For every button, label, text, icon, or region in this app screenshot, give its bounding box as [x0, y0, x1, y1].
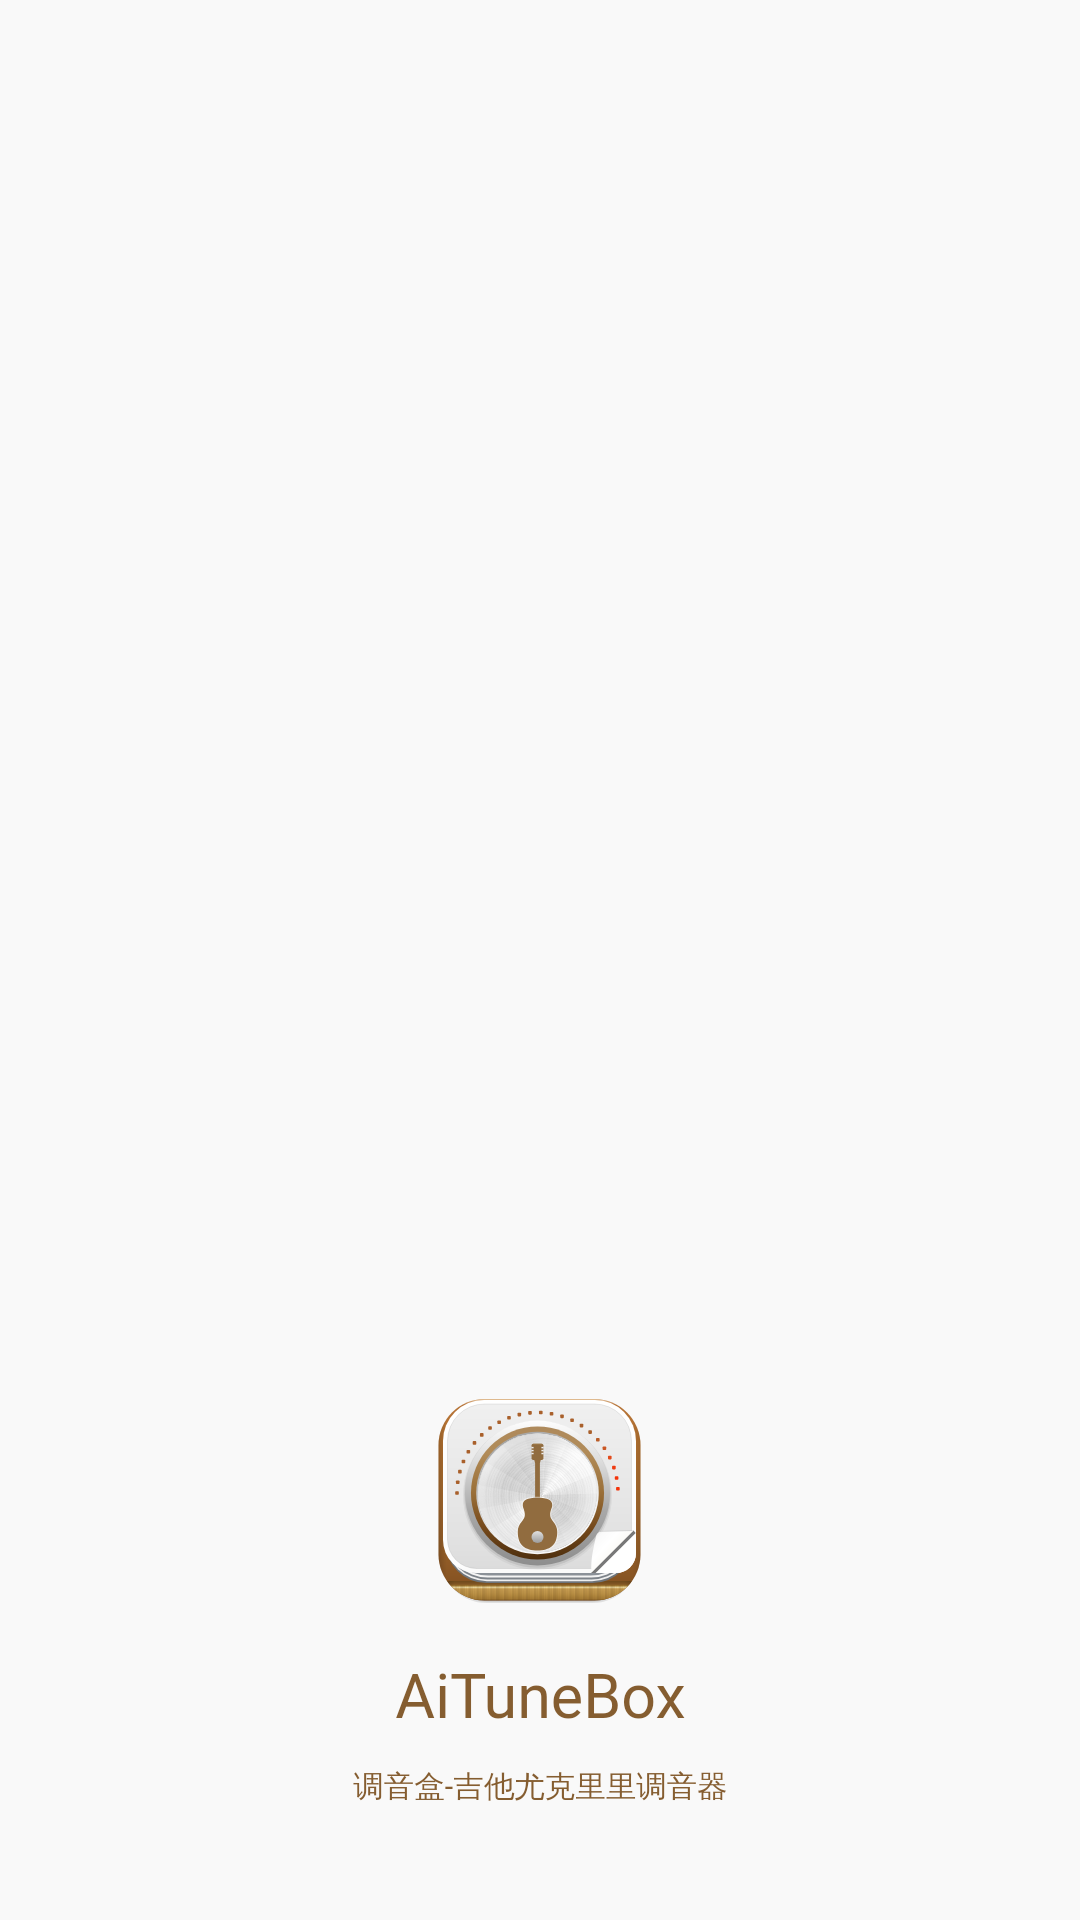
staticText: 调音盒-吉他尤克里里调音器: [353, 1768, 728, 1806]
staticText: AiTuneBox: [395, 1661, 686, 1732]
